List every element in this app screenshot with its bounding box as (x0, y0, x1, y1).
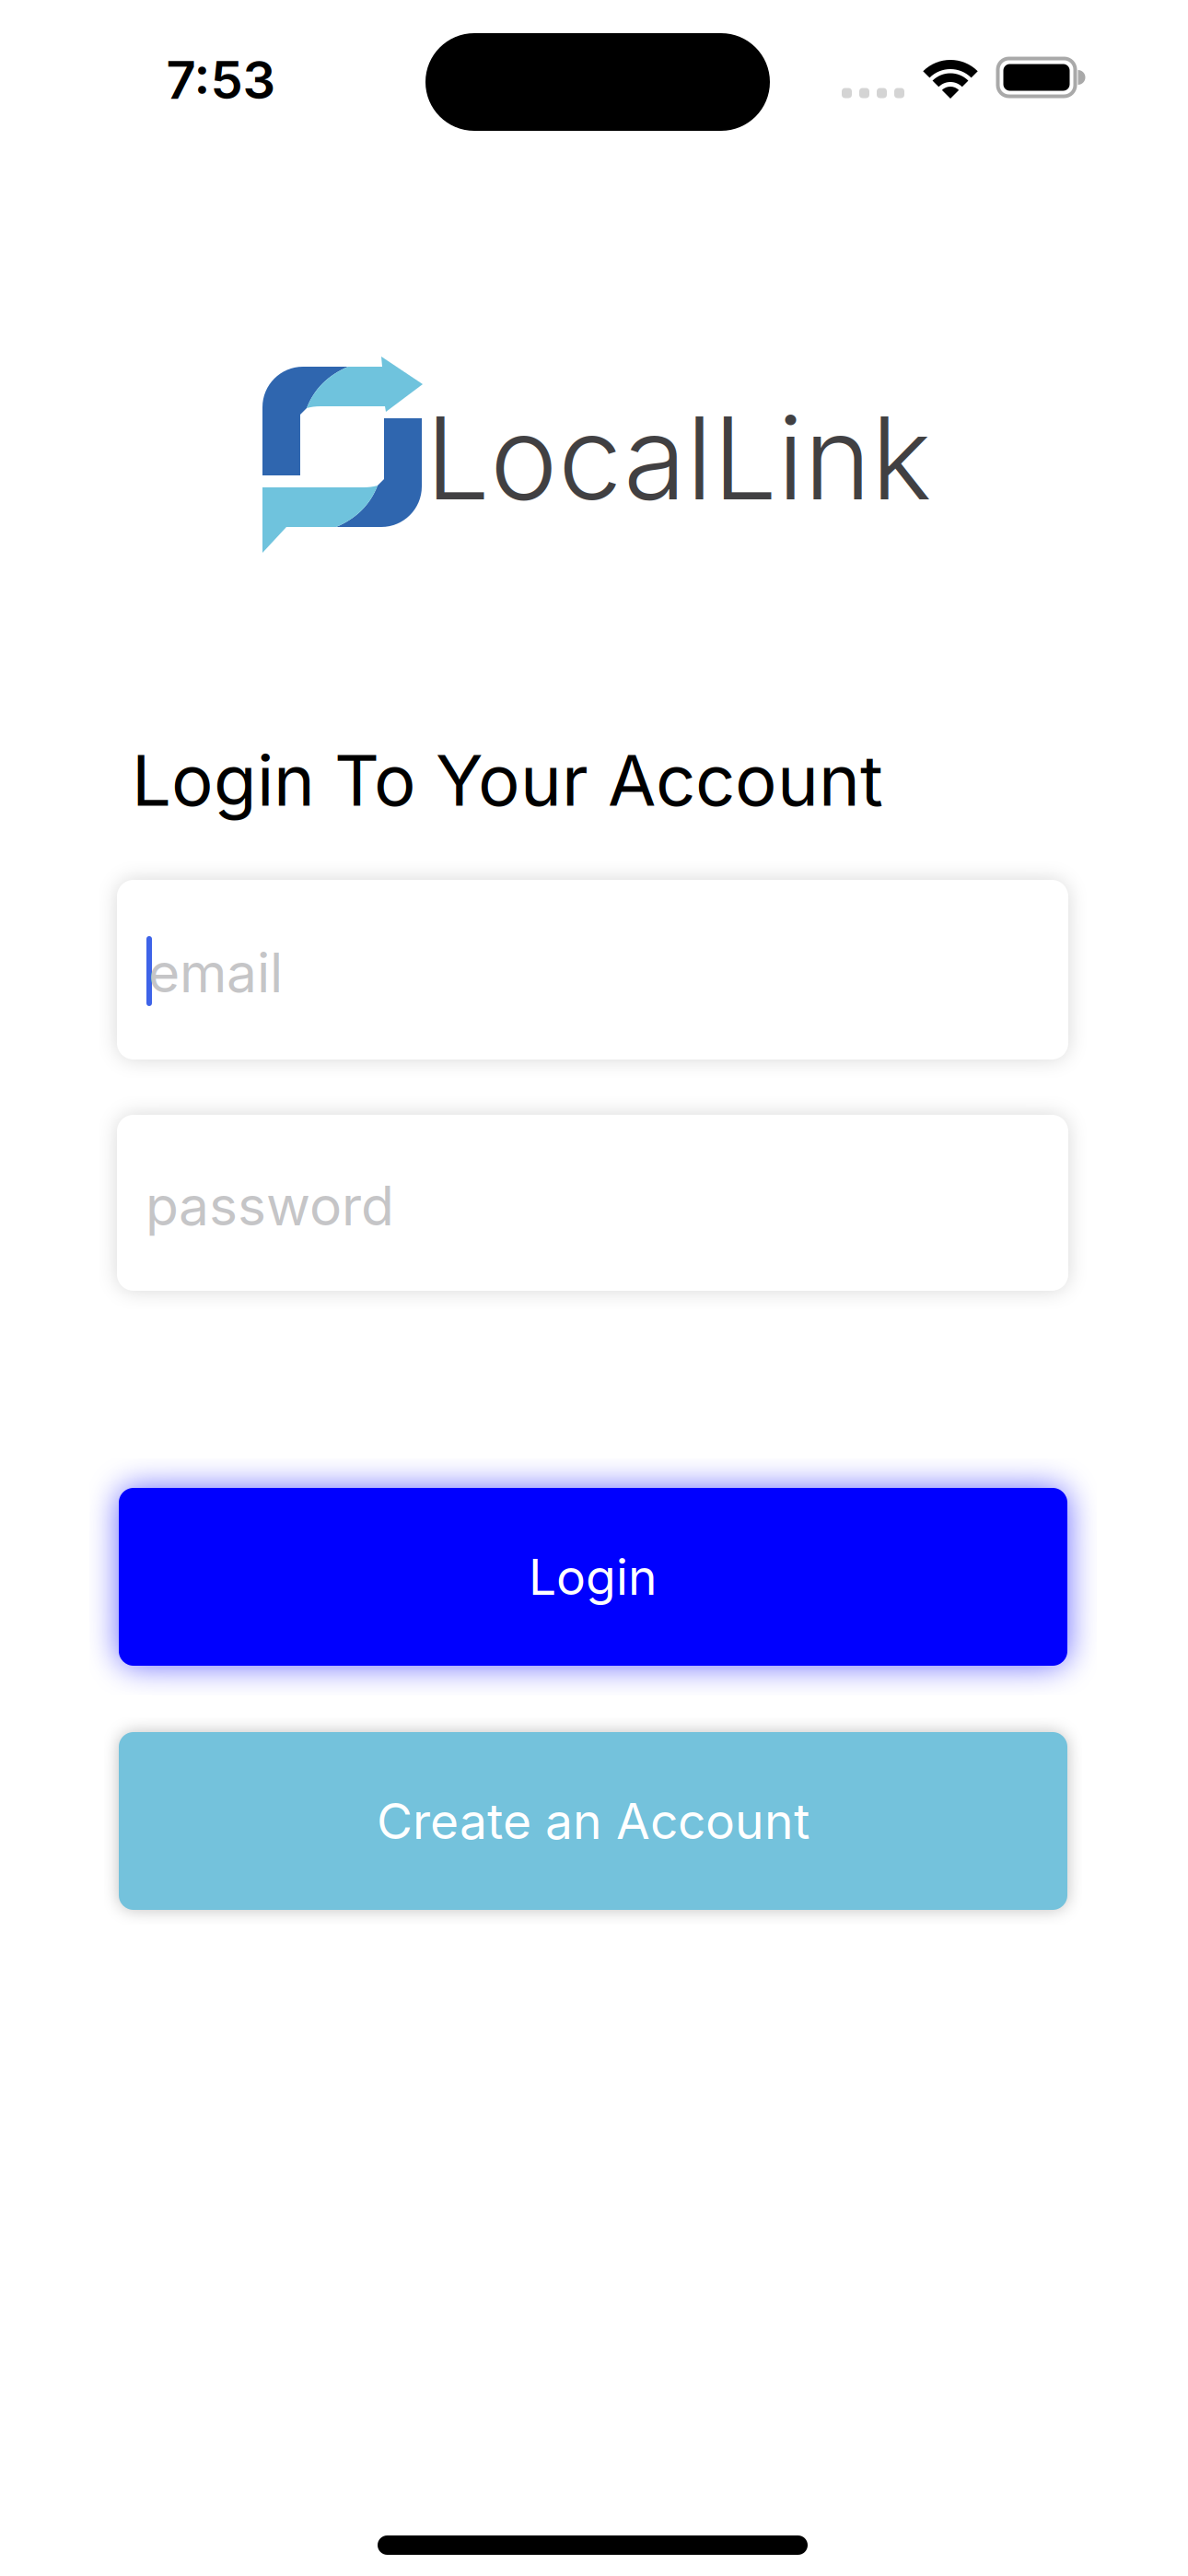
button[interactable]: Create an Account (119, 1732, 1067, 1910)
staticText: 7:53 (166, 50, 276, 111)
staticText: password (146, 1174, 394, 1238)
staticText: LocalLink (425, 391, 932, 525)
button[interactable]: email (117, 880, 1068, 1060)
staticText: email (148, 941, 283, 1004)
button[interactable]: password (117, 1115, 1068, 1291)
staticText: Login (529, 1548, 658, 1606)
staticText: Create an Account (377, 1792, 809, 1850)
staticText: Login To Your Account (132, 739, 883, 822)
button[interactable]: Login (119, 1488, 1067, 1666)
